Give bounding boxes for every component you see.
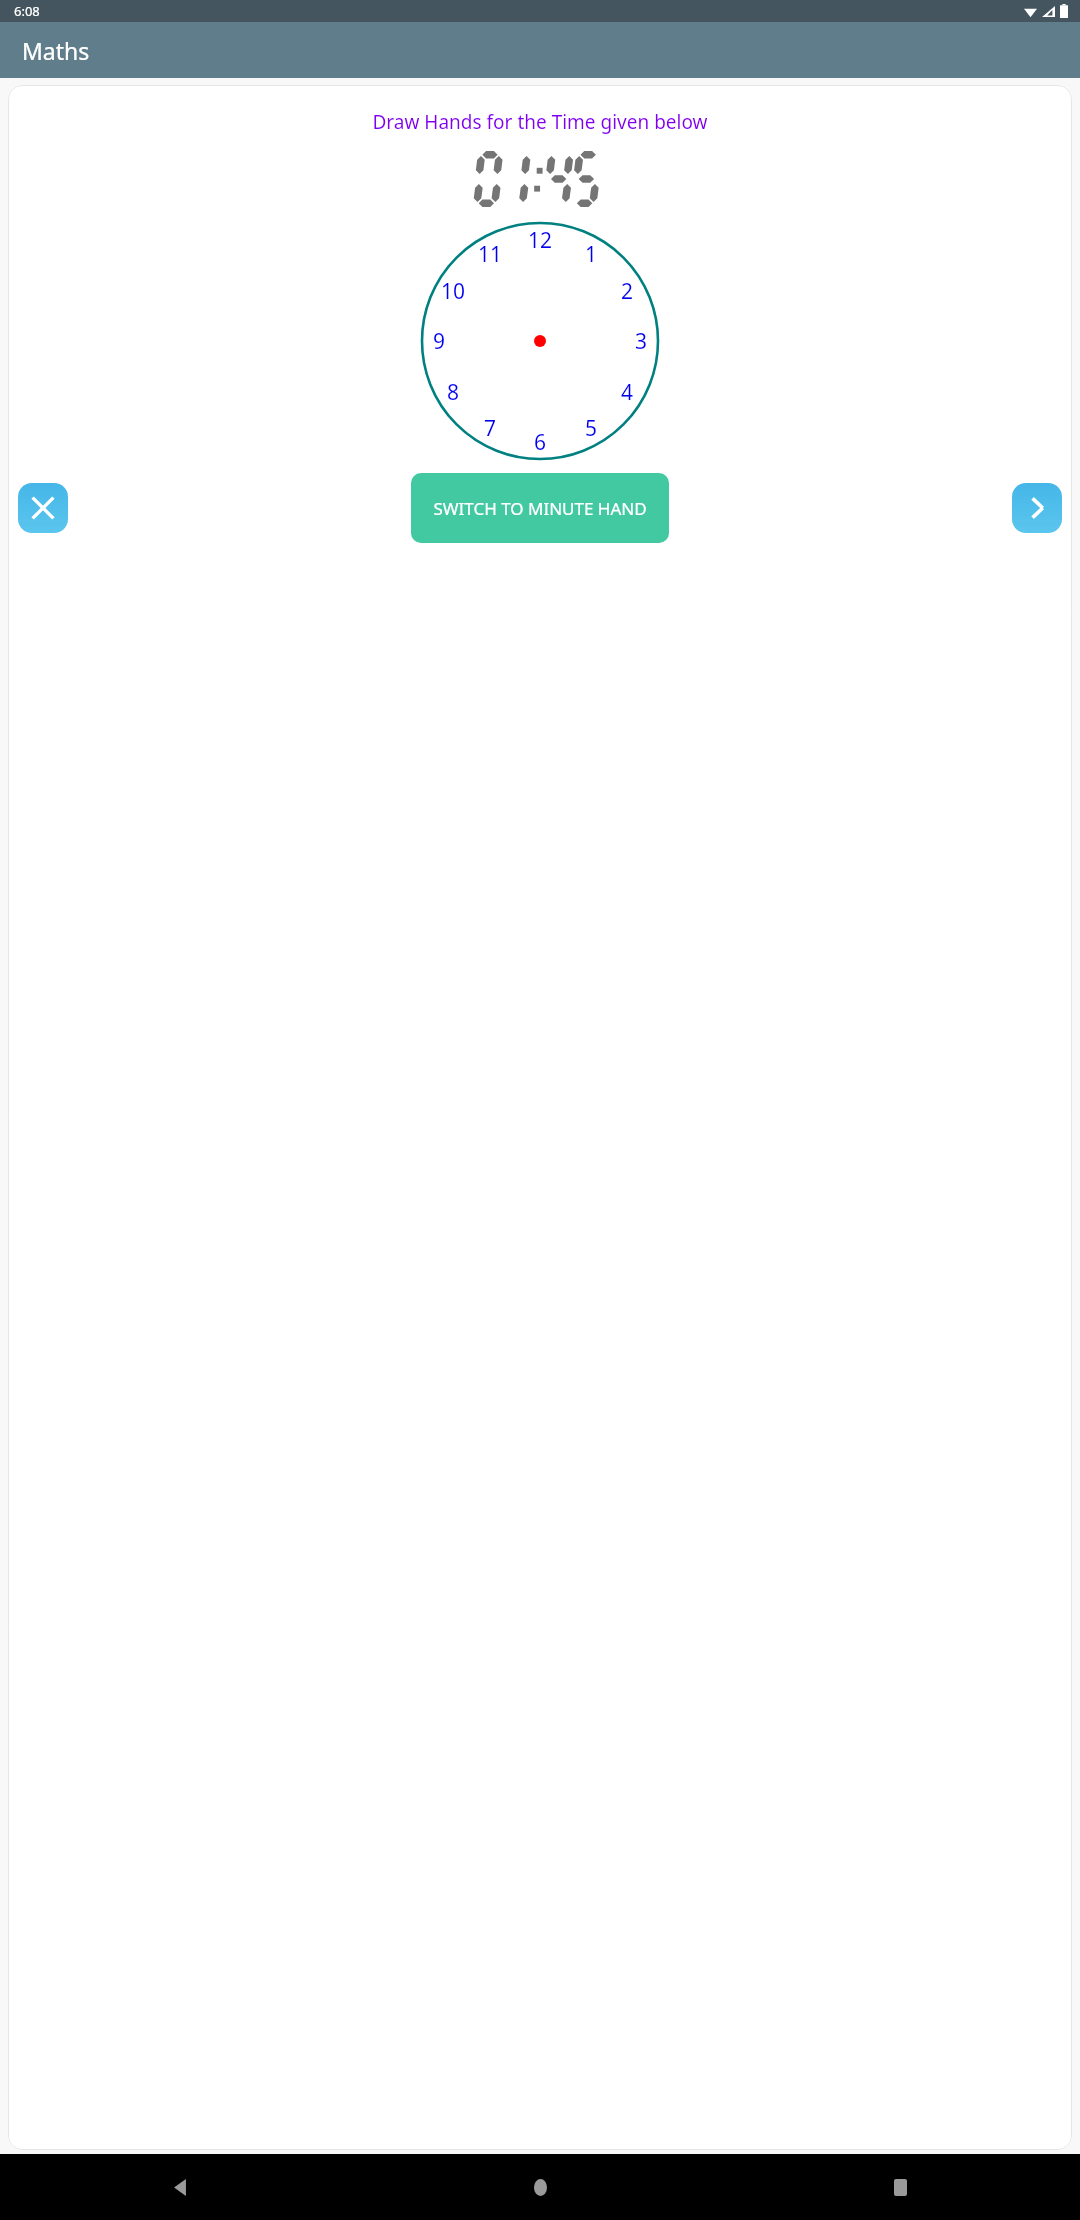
button[interactable]: SWITCH TO MINUTE HAND — [411, 473, 669, 543]
staticText: Maths — [22, 35, 90, 66]
staticText: 12 — [528, 226, 553, 255]
staticText: 10 — [441, 277, 466, 306]
button[interactable]: Home — [360, 2154, 720, 2220]
staticText: 4 — [621, 378, 634, 407]
staticText: 6 — [534, 428, 547, 457]
staticText: 5 — [585, 414, 598, 443]
staticText: 7 — [484, 414, 497, 443]
staticText: 3 — [635, 327, 648, 356]
button[interactable]: Clear hands — [18, 483, 68, 533]
button[interactable]: Back — [0, 2154, 360, 2220]
staticText: Draw Hands for the Time given below — [372, 109, 708, 135]
staticText: 11 — [478, 240, 503, 269]
staticText: 6:08 — [14, 2, 40, 20]
staticText: 2 — [621, 277, 634, 306]
button[interactable]: Next — [1012, 483, 1062, 533]
button[interactable]: Recent apps — [720, 2154, 1080, 2220]
staticText: SWITCH TO MINUTE HAND — [433, 497, 647, 520]
staticText: 9 — [433, 327, 446, 356]
staticText: 8 — [447, 378, 460, 407]
staticText: 1 — [585, 240, 598, 269]
